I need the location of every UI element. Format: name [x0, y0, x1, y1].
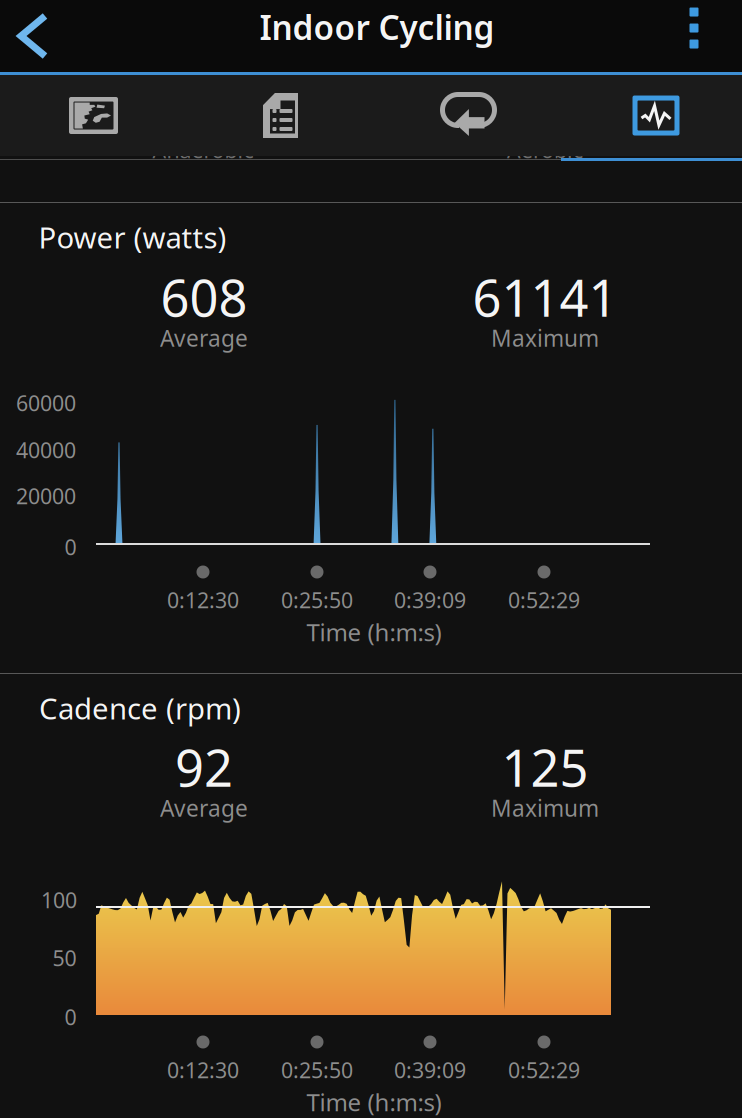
staticText: 92 [175, 733, 233, 801]
staticText: Average [160, 793, 248, 823]
staticText: 0:12:30 [167, 1056, 239, 1084]
staticText: Anaerobic [152, 136, 253, 164]
staticText: Aerobic [507, 136, 583, 164]
button[interactable]: Charts [563, 75, 742, 156]
staticText: Maximum [491, 793, 599, 823]
staticText: 0:39:09 [394, 1056, 466, 1084]
staticText: 608 [160, 263, 247, 331]
staticText: Power (watts) [38, 217, 226, 256]
staticText: 50 [52, 944, 76, 972]
staticText: 100 [41, 886, 77, 914]
staticText: 125 [501, 733, 588, 801]
button[interactable]: Map [1, 75, 186, 156]
button[interactable]: Back [0, 0, 66, 72]
staticText: Indoor Cycling [259, 5, 494, 49]
staticText: Time (h:m:s) [306, 1086, 441, 1118]
staticText: 60000 [16, 389, 76, 417]
staticText: 0:39:09 [394, 586, 466, 614]
staticText: 0:52:29 [508, 1056, 580, 1084]
staticText: 20000 [16, 482, 76, 510]
staticText: Time (h:m:s) [306, 616, 441, 648]
staticText: Average [160, 323, 248, 353]
staticText: 40000 [16, 436, 76, 464]
button[interactable]: More options [657, 0, 731, 64]
button[interactable]: Details [188, 75, 373, 156]
staticText: 0:12:30 [167, 586, 239, 614]
staticText: 61141 [472, 263, 617, 331]
staticText: 0 [64, 533, 76, 561]
staticText: 0:52:29 [508, 586, 580, 614]
staticText: Cadence (rpm) [39, 688, 241, 727]
staticText: 0:25:50 [281, 586, 353, 614]
staticText: 0 [64, 1003, 76, 1031]
button[interactable]: Laps [376, 75, 561, 156]
staticText: 0:25:50 [281, 1056, 353, 1084]
staticText: Maximum [491, 323, 599, 353]
